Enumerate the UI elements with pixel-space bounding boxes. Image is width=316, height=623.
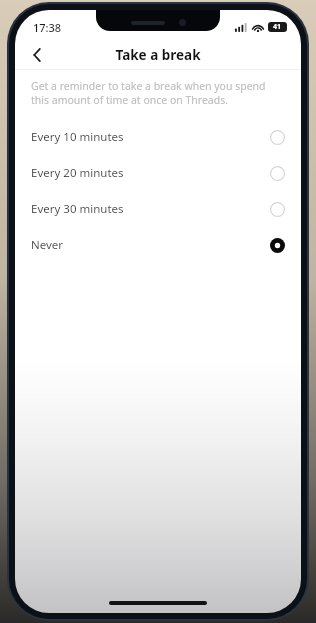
button[interactable]: Back [21, 40, 53, 70]
staticText: Every 30 minutes [31, 201, 270, 217]
staticText: Get a reminder to take a break when you … [31, 79, 285, 107]
staticText: Every 20 minutes [31, 165, 270, 181]
button[interactable]: Never [15, 227, 301, 263]
button[interactable]: Every 30 minutes [15, 191, 301, 227]
staticText: Take a break [115, 46, 201, 64]
staticText: Every 10 minutes [31, 129, 270, 145]
button[interactable]: Every 10 minutes [15, 119, 301, 155]
staticText: 17:38 [33, 20, 62, 35]
staticText: Never [31, 237, 270, 253]
staticText: 41 [273, 22, 282, 32]
button[interactable]: Every 20 minutes [15, 155, 301, 191]
